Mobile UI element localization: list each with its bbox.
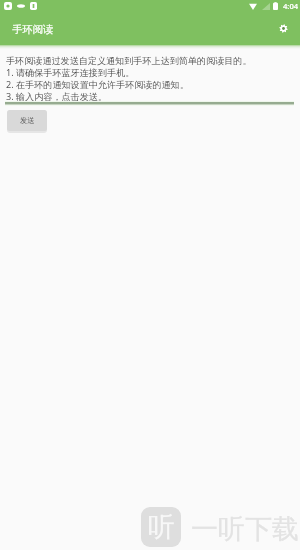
- staticText: 4:04: [283, 1, 299, 11]
- button[interactable]: Settings: [272, 17, 294, 39]
- staticText: 一听下载: [191, 512, 299, 546]
- staticText: 发送: [20, 116, 35, 125]
- button[interactable]: 发送: [7, 110, 47, 131]
- staticText: 手环阅读: [12, 23, 54, 36]
- staticText: 手环阅读通过发送自定义通知到手环上达到简单的阅读目的。 1. 请确保手环蓝牙连接…: [6, 55, 252, 103]
- staticText: 听: [148, 510, 175, 544]
